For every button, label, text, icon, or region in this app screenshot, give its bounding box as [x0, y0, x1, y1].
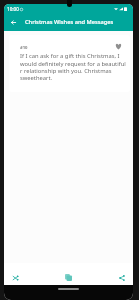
staticText: Christmas Wishes and Messages — [25, 18, 114, 26]
staticText: 10:00 — [7, 6, 19, 12]
button[interactable]: #10 — [9, 35, 130, 92]
button[interactable]: Share — [114, 270, 129, 285]
button[interactable]: Favorite — [113, 41, 123, 51]
button[interactable]: Back — [4, 14, 22, 31]
staticText: If I can ask for a gift this Christmas, … — [20, 52, 128, 81]
button[interactable]: Copy — [61, 270, 76, 285]
staticText: #10 — [20, 45, 28, 51]
button[interactable]: Shuffle — [8, 270, 23, 285]
